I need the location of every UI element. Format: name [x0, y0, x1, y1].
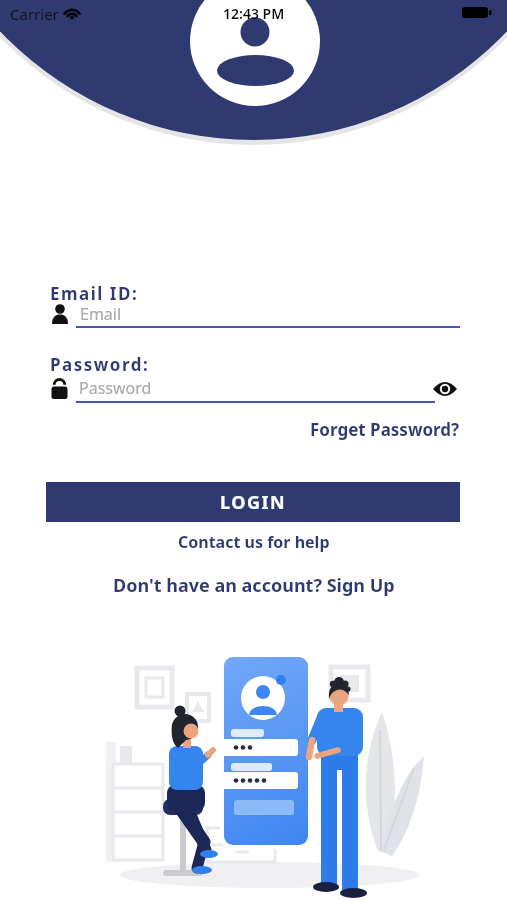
staticText: Contact us for help — [178, 531, 330, 553]
button[interactable]: Don't have an account? Sign Up — [113, 573, 395, 598]
button[interactable]: Password — [46, 375, 460, 405]
staticText: Email ID: — [50, 282, 139, 305]
button[interactable] — [432, 379, 460, 401]
staticText: 12:43 PM — [223, 4, 285, 23]
staticText: Password — [79, 377, 152, 399]
staticText: LOGIN — [220, 490, 287, 515]
button[interactable]: Contact us for help — [178, 531, 330, 553]
staticText: Don't have an account? Sign Up — [113, 573, 395, 598]
staticText: Carrier — [10, 4, 59, 24]
staticText: Password: — [50, 353, 150, 376]
staticText: Forget Password? — [310, 418, 460, 441]
button[interactable]: Forget Password? — [310, 418, 460, 441]
button[interactable]: LOGIN — [46, 482, 460, 522]
staticText: Email — [80, 303, 122, 325]
button[interactable]: Email — [46, 300, 460, 330]
